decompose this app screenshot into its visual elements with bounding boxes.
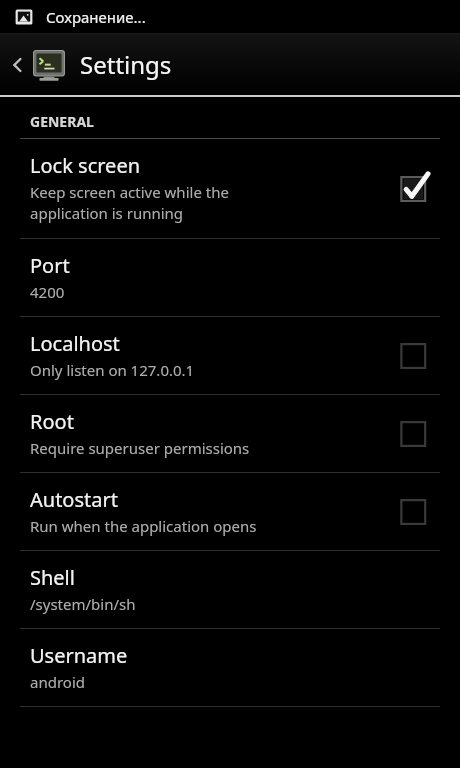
staticText: GENERAL <box>30 112 94 131</box>
staticText: Run when the application opens <box>30 516 257 536</box>
staticText: Only listen on 127.0.0.1 <box>30 360 195 380</box>
staticText: Settings <box>80 48 172 81</box>
staticText: Require superuser permissions <box>30 438 250 458</box>
button[interactable]: Unchecked <box>396 335 436 375</box>
button[interactable]: Unchecked <box>396 491 436 531</box>
button[interactable]: Autostart <box>0 473 460 550</box>
button[interactable]: Checked <box>396 168 436 208</box>
staticText: Сохранение... <box>46 7 146 27</box>
staticText: Shell <box>30 564 75 591</box>
staticText: Root <box>30 408 74 435</box>
button[interactable]: Back <box>0 34 460 95</box>
staticText: Keep screen active while the application… <box>30 182 229 224</box>
button[interactable]: Lock screen <box>0 139 460 238</box>
staticText: Port <box>30 252 70 279</box>
other: Back <box>6 53 30 77</box>
staticText: Username <box>30 642 128 669</box>
staticText: Autostart <box>30 486 118 513</box>
button[interactable]: Port <box>0 239 460 316</box>
staticText: 4200 <box>30 282 65 302</box>
staticText: /system/bin/sh <box>30 594 136 614</box>
staticText: Lock screen <box>30 152 141 179</box>
button[interactable]: Shell <box>0 551 460 628</box>
button[interactable]: Username <box>0 629 460 706</box>
staticText: android <box>30 672 85 692</box>
button[interactable]: Localhost <box>0 317 460 394</box>
button[interactable]: Unchecked <box>396 413 436 453</box>
button[interactable]: Root <box>0 395 460 472</box>
staticText: Localhost <box>30 330 120 357</box>
